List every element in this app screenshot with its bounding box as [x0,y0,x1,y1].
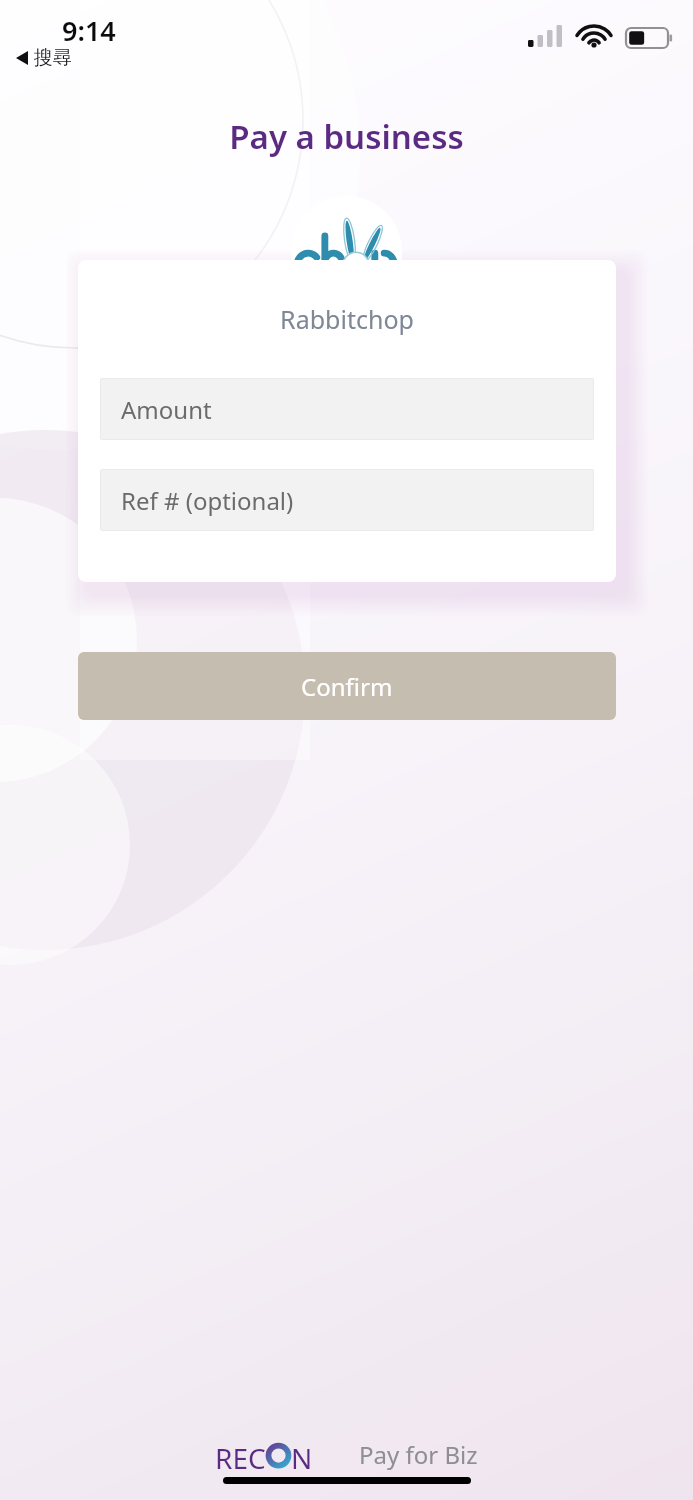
button[interactable]: Amount [100,378,594,440]
staticText: Amount [121,393,212,426]
staticText: N [291,1439,313,1471]
staticText: Pay for Biz [359,1438,478,1471]
staticText: Ref # (optional) [121,484,294,517]
staticText: Rabbitchop [78,302,616,336]
staticText: REC [215,1439,266,1471]
button[interactable]: Ref # (optional) [100,469,594,531]
button[interactable]: Confirm [78,652,616,720]
button[interactable]: 搜尋 [14,44,74,72]
button[interactable]: RECON [215,1439,347,1471]
staticText: 搜尋 [34,46,72,70]
staticText: Confirm [301,670,393,703]
staticText: 9:14 [62,12,116,49]
staticText: Pay a business [229,114,464,159]
